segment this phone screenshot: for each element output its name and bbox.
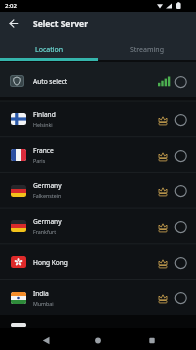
staticText: 2:02	[5, 2, 17, 10]
staticText: Auto select	[33, 77, 68, 86]
button[interactable]	[0, 280, 196, 316]
staticText: Select Server	[33, 18, 88, 30]
staticText: Helsinki	[33, 121, 53, 128]
button[interactable]	[0, 137, 196, 173]
staticText: France	[33, 146, 54, 155]
button[interactable]: Streaming	[98, 40, 196, 60]
button[interactable]	[0, 208, 196, 244]
button[interactable]	[0, 101, 196, 137]
button[interactable]	[30, 330, 62, 350]
button[interactable]	[0, 62, 196, 97]
staticText: Paris	[33, 157, 46, 164]
staticText: India	[33, 289, 49, 298]
button[interactable]	[82, 330, 114, 350]
staticText: Mumbai	[33, 300, 54, 307]
staticText: Streaming	[130, 45, 164, 55]
staticText: Falkenstein	[33, 192, 62, 199]
button[interactable]	[0, 244, 196, 280]
button[interactable]	[136, 330, 168, 350]
staticText: Germany	[33, 217, 62, 226]
staticText: Frankfurt	[33, 228, 57, 235]
staticText: Finland	[33, 110, 56, 119]
button[interactable]	[6, 15, 23, 32]
button[interactable]: Location	[0, 40, 98, 60]
staticText: Hong Kong	[33, 258, 68, 267]
button[interactable]	[0, 172, 196, 208]
staticText: Location	[35, 45, 64, 55]
staticText: Germany	[33, 181, 62, 190]
